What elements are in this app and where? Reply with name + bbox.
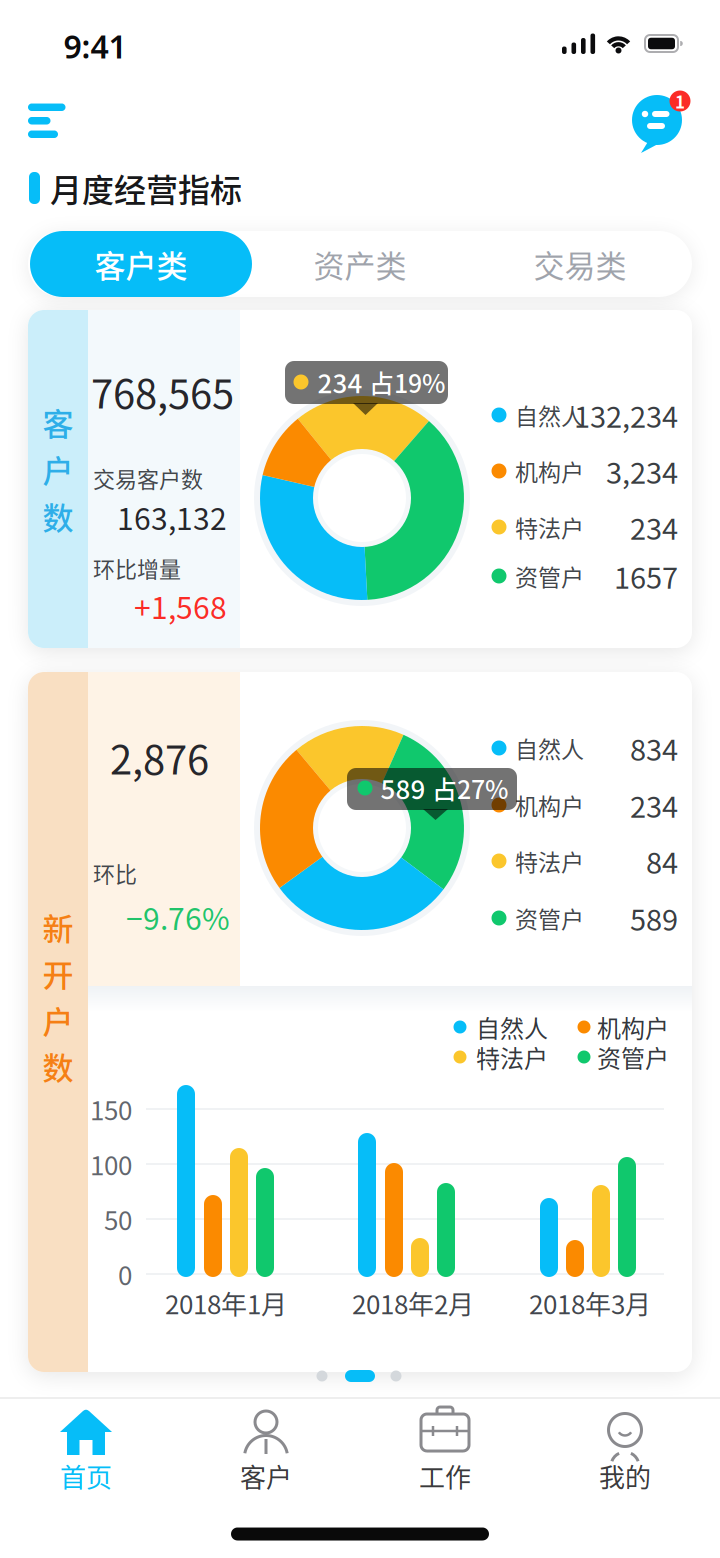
staticText: 589	[630, 897, 678, 939]
button[interactable]: 工作	[415, 1404, 475, 1492]
staticText: 84	[646, 840, 678, 882]
staticText: 特法户	[515, 510, 584, 544]
staticText: 机构户	[515, 454, 584, 488]
button[interactable]: 我的	[595, 1404, 655, 1492]
staticText: 234	[630, 784, 678, 826]
staticText: 数	[42, 1044, 73, 1088]
staticText: 3,234	[606, 450, 678, 492]
staticText: 新	[42, 905, 73, 949]
staticText: 开	[42, 951, 73, 995]
staticText: 2018年1月	[165, 1284, 287, 1322]
staticText: 机构户	[597, 1010, 669, 1044]
staticText: 0	[118, 1255, 132, 1293]
staticText: −9.76%	[126, 895, 230, 939]
staticText: 客	[42, 400, 73, 444]
staticText: 客户	[240, 1457, 292, 1495]
staticText: 9:41	[63, 25, 126, 67]
staticText: 数	[42, 494, 73, 538]
staticText: 234	[630, 506, 678, 548]
staticText: 自然人	[476, 1010, 548, 1044]
staticText: 资管户	[515, 559, 584, 593]
staticText: 2018年3月	[529, 1284, 651, 1322]
staticText: +1,568	[134, 584, 227, 628]
staticText: 首页	[60, 1457, 112, 1495]
staticText: 交易类	[533, 242, 626, 286]
staticText: 资产类	[313, 242, 406, 286]
staticText: 163,132	[117, 495, 227, 539]
staticText: 交易客户数	[93, 462, 203, 494]
staticText: 环比	[93, 857, 137, 889]
button[interactable]: 资产类	[250, 231, 470, 297]
staticText: 834	[630, 727, 678, 769]
staticText: 589	[380, 769, 425, 807]
staticText: 资管户	[597, 1040, 669, 1074]
staticText: 工作	[419, 1457, 471, 1495]
staticText: 1657	[614, 555, 678, 597]
staticText: 环比增量	[93, 552, 181, 584]
button[interactable]: 交易类	[470, 231, 690, 297]
staticText: 机构户	[515, 788, 584, 822]
staticText: 资管户	[515, 901, 584, 935]
staticText: 占19%	[369, 364, 445, 400]
staticText: 1	[675, 89, 685, 113]
button[interactable]: 客户类	[30, 231, 252, 297]
staticText: 768,565	[91, 362, 234, 420]
staticText: 50	[104, 1200, 132, 1238]
staticText: 100	[90, 1145, 132, 1183]
staticText: 自然人	[515, 398, 584, 432]
button[interactable]: 客户	[236, 1404, 296, 1492]
staticText: 我的	[599, 1457, 651, 1495]
staticText: 客户类	[94, 242, 187, 286]
button[interactable]: Messages	[627, 90, 693, 156]
staticText: 特法户	[515, 844, 584, 878]
staticText: 2,876	[110, 728, 209, 786]
staticText: 2018年2月	[352, 1284, 474, 1322]
staticText: 月度经营指标	[50, 165, 242, 211]
staticText: 自然人	[515, 731, 584, 765]
button[interactable]: 首页	[56, 1404, 116, 1492]
staticText: 户	[42, 447, 73, 491]
staticText: 234	[317, 363, 362, 401]
staticText: 户	[42, 998, 73, 1042]
staticText: 特法户	[476, 1040, 548, 1074]
staticText: 150	[90, 1090, 132, 1128]
staticText: 占27%	[432, 770, 508, 806]
staticText: 132,234	[574, 394, 678, 436]
button[interactable]: Menu	[28, 103, 65, 138]
